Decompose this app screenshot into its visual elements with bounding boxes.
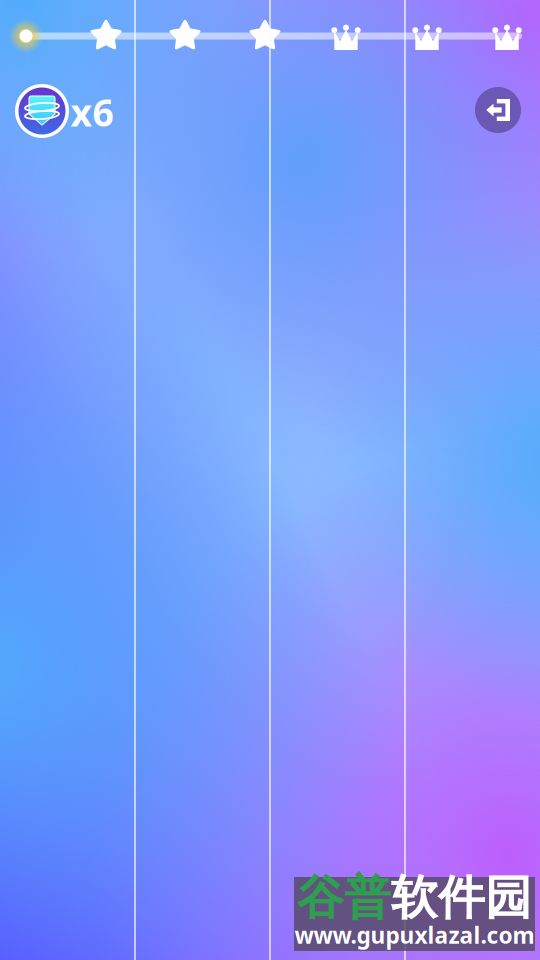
staticText: x6: [70, 87, 113, 137]
staticText: www.gupuxlazal.com: [294, 920, 534, 950]
staticText: 谷普: [297, 869, 391, 927]
button[interactable]: Exit: [473, 85, 523, 135]
staticText: 软件园: [391, 869, 532, 927]
